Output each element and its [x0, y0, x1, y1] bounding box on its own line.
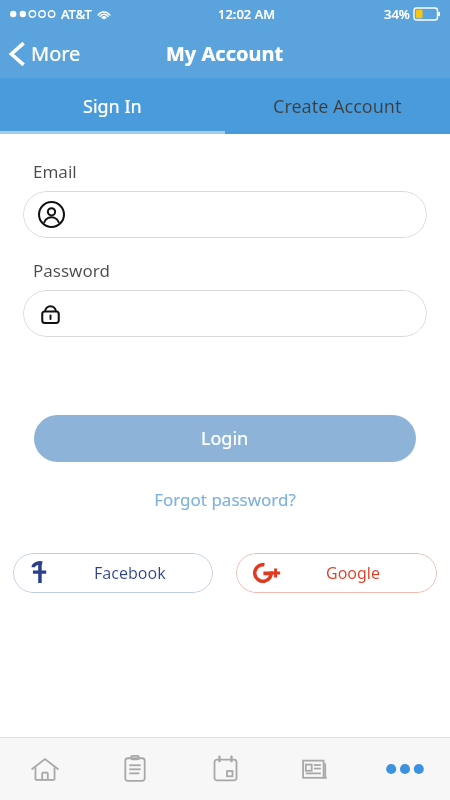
staticText: Sign In — [83, 94, 142, 119]
staticText: 12:02 AM — [218, 5, 276, 23]
staticText: Facebook — [94, 562, 166, 584]
button[interactable]: News — [270, 737, 360, 800]
button[interactable]: Home — [0, 737, 90, 800]
button[interactable]: Forgot password? — [140, 484, 310, 515]
button[interactable]: Google — [236, 553, 437, 593]
staticText: Password — [33, 259, 110, 282]
button[interactable]: Tasks — [90, 737, 180, 800]
button[interactable]: Facebook — [13, 553, 213, 593]
button[interactable]: Calendar — [180, 737, 270, 800]
staticText: Email — [33, 160, 77, 183]
button[interactable]: Sign In — [0, 78, 225, 134]
staticText: Login — [201, 426, 249, 451]
button[interactable] — [23, 191, 427, 238]
button[interactable]: Login — [34, 415, 416, 462]
button[interactable]: More options — [360, 737, 450, 800]
staticText: 34% — [384, 5, 410, 23]
staticText: More — [31, 40, 81, 67]
button[interactable]: Create Account — [225, 78, 450, 134]
staticText: My Account — [166, 40, 284, 67]
button[interactable]: More — [0, 34, 93, 73]
staticText: AT&T — [61, 5, 92, 23]
staticText: Forgot password? — [154, 488, 296, 511]
button[interactable] — [23, 290, 427, 337]
staticText: Google — [326, 562, 381, 584]
staticText: Create Account — [273, 94, 402, 119]
